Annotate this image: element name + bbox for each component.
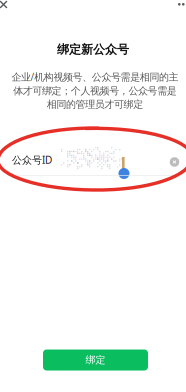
staticText: 相同的管理员才可绑定 xyxy=(47,98,143,111)
staticText: 公众号ID xyxy=(12,153,52,167)
staticText: 绑定 xyxy=(85,354,105,366)
button[interactable]: More options xyxy=(178,3,186,17)
staticText: 企业/机构视频号、公众号需是相同的主 xyxy=(11,70,179,84)
button[interactable]: 绑定 xyxy=(43,349,148,370)
button[interactable]: Close xyxy=(0,0,17,14)
button[interactable]: Clear text xyxy=(166,154,182,170)
staticText: 体才可绑定；个人视频号，公众号需是 xyxy=(13,85,177,97)
staticText: 绑定新公众号 xyxy=(57,42,129,57)
